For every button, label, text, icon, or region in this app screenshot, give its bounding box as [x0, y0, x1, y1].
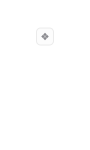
- button[interactable]: New: [36, 28, 53, 45]
